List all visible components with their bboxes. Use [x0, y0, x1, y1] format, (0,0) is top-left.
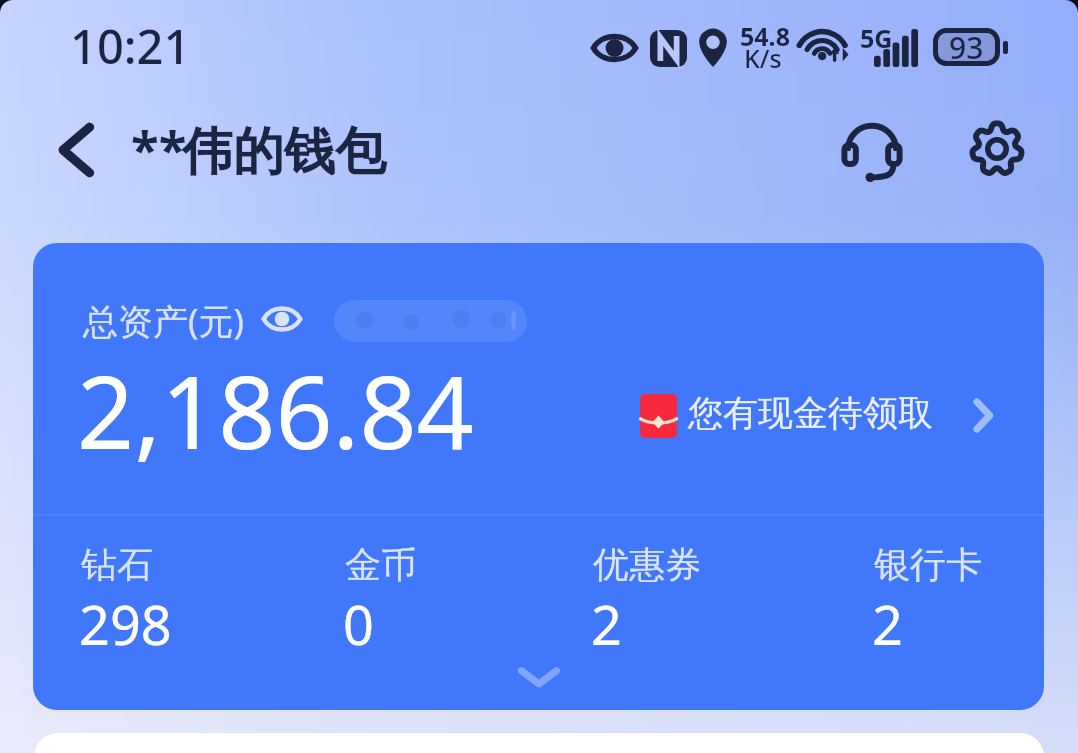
staticText: 5G: [860, 21, 893, 55]
staticText: 10:21: [70, 14, 191, 78]
staticText: 钻石: [81, 542, 153, 587]
staticText: 54.8: [740, 19, 790, 53]
button[interactable]: 钻石: [81, 542, 174, 661]
button[interactable]: 您有现金待领取: [633, 376, 1033, 448]
button[interactable]: 金币: [345, 542, 417, 661]
staticText: 银行卡: [874, 542, 982, 587]
button[interactable]: Settings: [957, 109, 1037, 189]
staticText: K/s: [744, 41, 782, 75]
button[interactable]: 优惠券: [593, 542, 701, 661]
button[interactable]: Expand: [506, 657, 572, 697]
staticText: 298: [79, 587, 172, 661]
staticText: 2,186.84: [77, 342, 474, 478]
button[interactable]: Back: [43, 115, 109, 185]
staticText: 总资产(元): [83, 297, 245, 345]
staticText: 伟的钱包: [182, 120, 386, 184]
staticText: 您有现金待领取: [688, 391, 933, 435]
button[interactable]: 银行卡: [874, 542, 982, 661]
staticText: 2: [591, 587, 622, 661]
button[interactable]: Customer support: [832, 113, 912, 193]
staticText: **: [131, 113, 187, 182]
staticText: 优惠券: [593, 542, 701, 587]
staticText: 0: [343, 587, 374, 661]
staticText: 93: [949, 27, 984, 65]
staticText: 金币: [345, 542, 417, 587]
staticText: 2: [872, 587, 903, 661]
button[interactable]: Account level: [334, 300, 527, 342]
button[interactable]: Toggle balance visibility: [256, 296, 308, 342]
